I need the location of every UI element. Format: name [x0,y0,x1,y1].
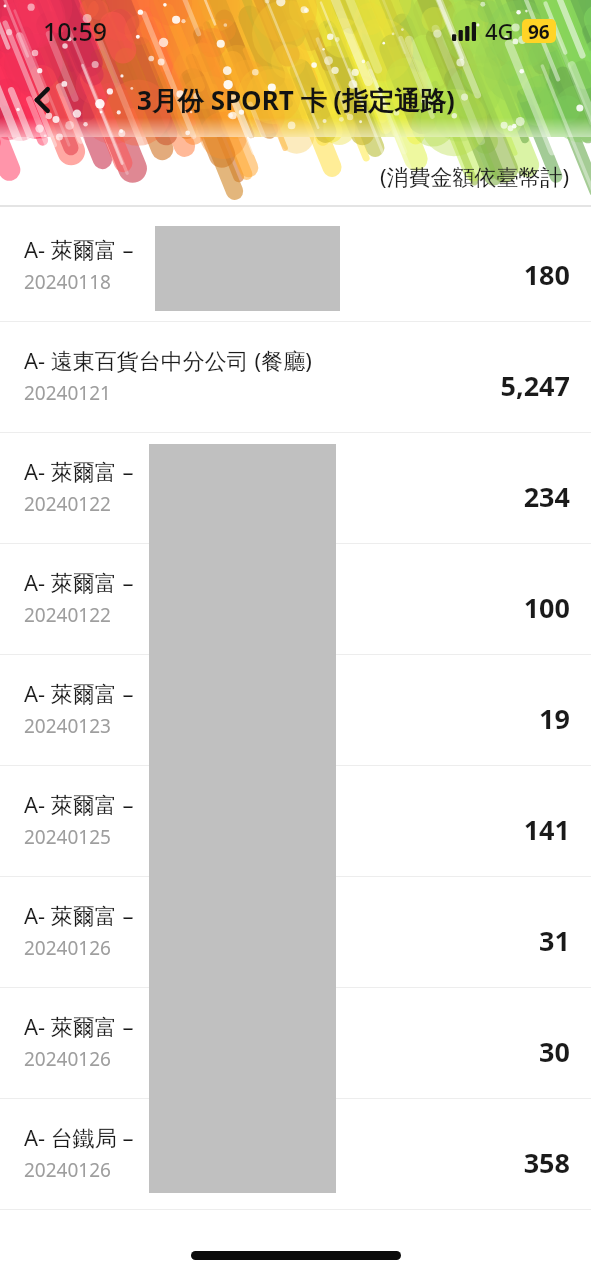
staticText: A- 萊爾富 – [24,789,134,819]
button[interactable]: A- 萊爾富 – [0,988,591,1098]
staticText: 96 [528,19,550,43]
staticText: 31 [539,922,570,959]
staticText: 100 [523,589,570,626]
button[interactable]: A- 萊爾富 – [0,766,591,876]
staticText: (消費金額依臺幣計) [380,161,570,191]
staticText: 234 [523,478,570,515]
button[interactable]: A- 台鐵局 – [0,1099,591,1209]
staticText: 358 [523,1144,570,1181]
staticText: 20240126 [24,1046,111,1072]
staticText: 20240118 [24,269,111,295]
staticText: 20240122 [24,602,111,628]
button[interactable]: A- 萊爾富 – [0,655,591,765]
button[interactable]: A- 萊爾富 – [0,544,591,654]
staticText: 20240121 [24,380,111,406]
staticText: A- 萊爾富 – [24,678,134,708]
staticText: 10:59 [43,14,108,48]
staticText: 19 [539,700,570,737]
button[interactable]: A- 遠東百貨台中分公司 (餐廳) [0,322,591,432]
staticText: 20240125 [24,824,111,850]
staticText: A- 萊爾富 – [24,900,134,930]
staticText: 3月份 SPORT 卡 (指定通路) [137,82,455,118]
staticText: 180 [523,256,570,293]
staticText: A- 萊爾富 – [24,567,134,597]
button[interactable]: A- 萊爾富 – [0,433,591,543]
staticText: 20240126 [24,1157,111,1183]
staticText: 4G [485,16,514,46]
staticText: A- 萊爾富 – [24,456,134,486]
staticText: 20240123 [24,713,111,739]
staticText: 30 [539,1033,570,1070]
staticText: A- 台鐵局 – [24,1122,134,1152]
button[interactable]: A- 萊爾富 – [0,877,591,987]
staticText: 5,247 [500,367,570,404]
staticText: A- 遠東百貨台中分公司 (餐廳) [24,345,312,375]
button[interactable]: A- 萊爾富 – [0,212,591,321]
staticText: 20240122 [24,491,111,517]
staticText: 141 [523,811,570,848]
staticText: A- 萊爾富 – [24,234,134,264]
staticText: 20240126 [24,935,111,961]
staticText: A- 萊爾富 – [24,1011,134,1041]
button[interactable]: Back [14,72,70,128]
